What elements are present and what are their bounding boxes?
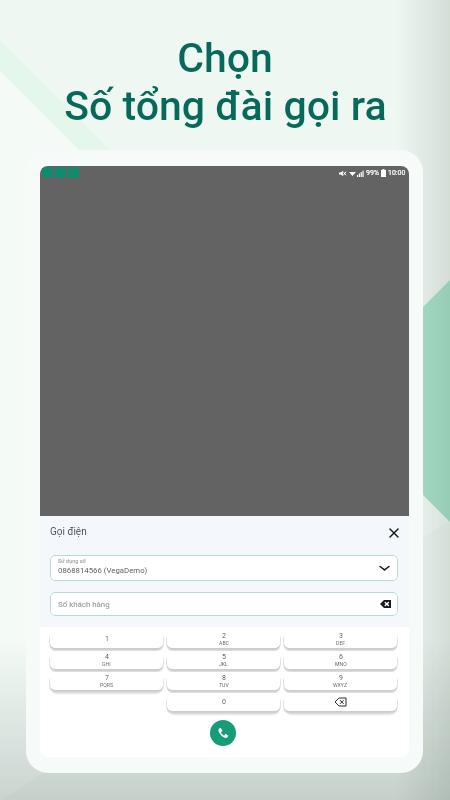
button[interactable]: 7 [50, 672, 163, 690]
staticText: PQRS [100, 682, 114, 688]
staticText: 8 [222, 674, 226, 682]
button[interactable]: 8 [167, 672, 280, 690]
staticText: 7 [105, 674, 109, 682]
staticText: ABC [219, 640, 229, 646]
staticText: DEF [336, 640, 346, 646]
staticText: Sử dụng số [58, 558, 86, 564]
button[interactable]: Sử dụng số [50, 555, 398, 581]
staticText: 5 [222, 653, 226, 661]
staticText: JKL [219, 661, 228, 667]
staticText: Gọi điện [50, 526, 87, 538]
staticText: 9 [339, 674, 343, 682]
staticText: Chọn [177, 34, 273, 82]
button[interactable]: 0 [167, 693, 280, 711]
button[interactable] [284, 693, 397, 711]
staticText: 6 [339, 653, 343, 661]
staticText: Số tổng đài gọi ra [64, 82, 387, 130]
button[interactable]: Close [384, 523, 404, 543]
staticText: 0 [222, 698, 226, 706]
staticText: 4 [105, 653, 109, 661]
staticText: 10:00 [388, 169, 406, 177]
button[interactable]: 3 [284, 630, 397, 648]
button[interactable]: 9 [284, 672, 397, 690]
staticText: 2 [222, 632, 226, 640]
staticText: 3 [339, 632, 343, 640]
staticText: GHI [102, 661, 111, 667]
button[interactable]: Call [210, 720, 236, 746]
staticText: MNO [335, 661, 347, 667]
staticText: TUV [219, 682, 229, 688]
button[interactable]: 2 [167, 630, 280, 648]
staticText: 99% [366, 169, 379, 177]
button[interactable]: 1 [50, 630, 163, 648]
staticText: Số khách hàng [58, 600, 110, 609]
button[interactable]: Số khách hàng [50, 592, 398, 616]
staticText: 0868814566 (VegaDemo) [58, 566, 148, 575]
button[interactable]: 5 [167, 651, 280, 669]
button[interactable]: 6 [284, 651, 397, 669]
button[interactable]: 4 [50, 651, 163, 669]
button[interactable]: Clear [378, 597, 392, 611]
staticText: 1 [105, 635, 109, 643]
staticText: WXYZ [333, 682, 348, 688]
